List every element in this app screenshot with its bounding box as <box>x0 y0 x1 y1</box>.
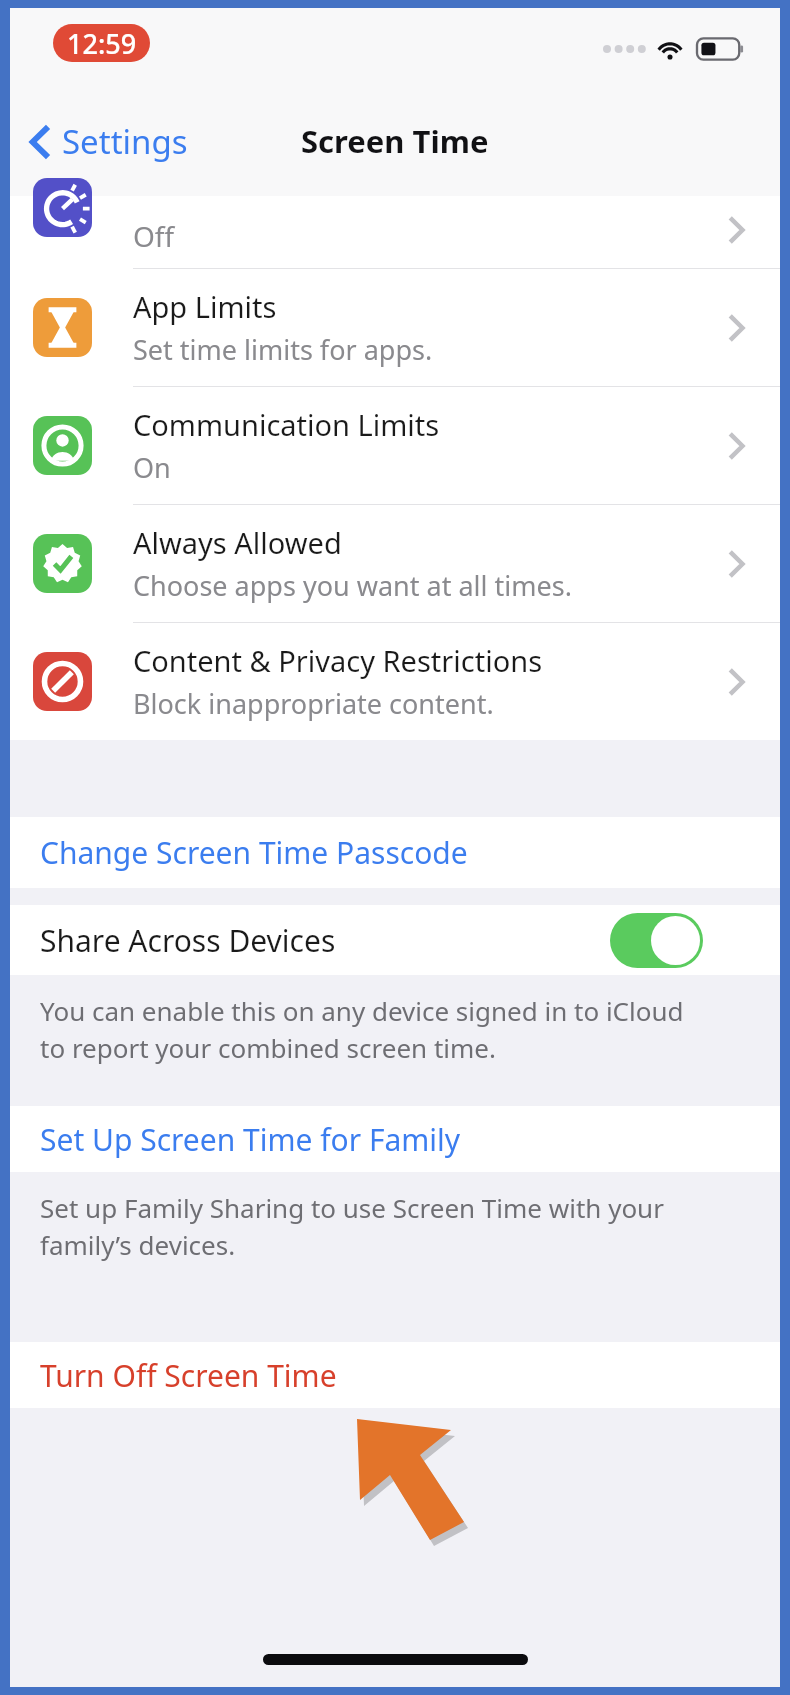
staticText: Set time limits for apps. <box>133 331 433 368</box>
staticText: On <box>133 449 171 486</box>
staticText: Communication Limits <box>133 405 440 444</box>
staticText: Settings <box>62 119 188 164</box>
staticText: Screen Time <box>301 120 489 162</box>
button[interactable]: Settings <box>24 111 200 172</box>
button[interactable]: Communication Limits <box>10 387 780 504</box>
button[interactable]: App Limits <box>10 269 780 386</box>
staticText: Content & Privacy Restrictions <box>133 641 543 680</box>
staticText: You can enable this on any device signed… <box>40 993 710 1066</box>
staticText: Choose apps you want at all times. <box>133 567 572 604</box>
staticText: Turn Off Screen Time <box>40 1355 337 1396</box>
staticText: Off <box>133 217 175 255</box>
button[interactable]: Off <box>10 196 780 268</box>
staticText: App Limits <box>133 287 277 326</box>
button[interactable]: Content & Privacy Restrictions <box>10 623 780 740</box>
staticText: Always Allowed <box>133 523 342 562</box>
button[interactable]: Always Allowed <box>10 505 780 622</box>
staticText: Change Screen Time Passcode <box>40 832 468 873</box>
button[interactable]: Set Up Screen Time for Family <box>10 1106 780 1172</box>
button[interactable]: Change Screen Time Passcode <box>10 817 780 888</box>
staticText: Set Up Screen Time for Family <box>40 1119 461 1160</box>
staticText: Set up Family Sharing to use Screen Time… <box>40 1190 710 1263</box>
staticText: Share Across Devices <box>40 920 336 961</box>
button[interactable]: Share Across Devices <box>10 905 780 975</box>
staticText: 12:59 <box>67 25 137 62</box>
button[interactable]: Turn Off Screen Time <box>10 1342 780 1408</box>
staticText: Block inappropriate content. <box>133 685 494 722</box>
